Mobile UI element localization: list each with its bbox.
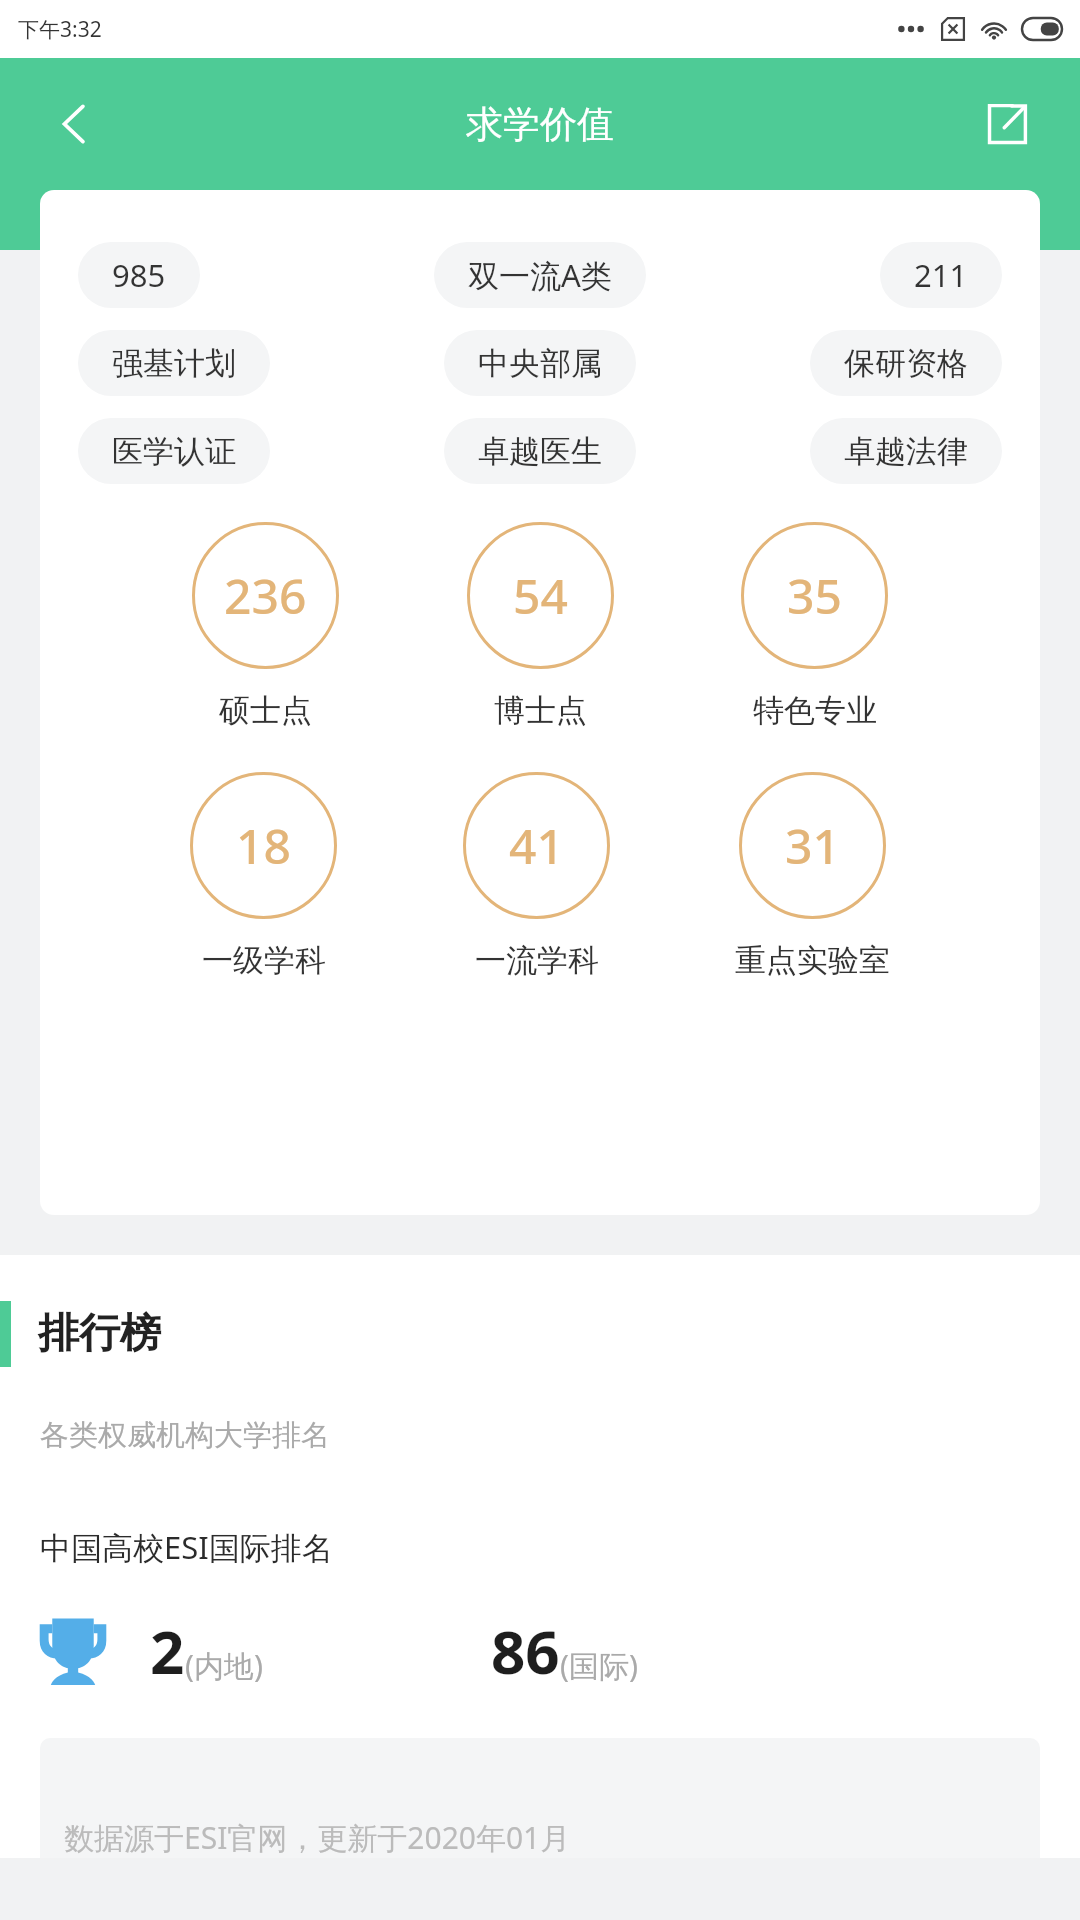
staticText: 86 <box>491 1610 560 1692</box>
staticText: 排行榜 <box>38 1308 161 1360</box>
staticText: 31 <box>785 813 840 878</box>
button[interactable]: 211 <box>880 242 1002 308</box>
staticText: 35 <box>787 563 842 628</box>
button[interactable]: 卓越医生 <box>444 418 636 484</box>
button[interactable]: 强基计划 <box>78 330 270 396</box>
button[interactable]: 中央部属 <box>444 330 636 396</box>
button[interactable]: Share <box>974 91 1040 157</box>
staticText: 41 <box>509 813 564 878</box>
staticText: 一流学科 <box>475 941 599 980</box>
staticText: 236 <box>224 563 307 628</box>
button[interactable]: 985 <box>78 242 200 308</box>
staticText: (内地) <box>185 1645 263 1686</box>
staticText: 特色专业 <box>753 691 877 730</box>
staticText: 强基计划 <box>112 344 236 383</box>
staticText: 54 <box>513 563 568 628</box>
staticText: 卓越医生 <box>478 432 602 471</box>
staticText: 博士点 <box>494 691 587 730</box>
button[interactable]: Back <box>42 91 108 157</box>
staticText: 卓越法律 <box>844 432 968 471</box>
button[interactable]: 双一流A类 <box>434 242 646 308</box>
staticText: 211 <box>914 254 968 296</box>
staticText: 985 <box>112 254 166 296</box>
staticText: 下午3:32 <box>18 15 102 44</box>
staticText: 数据源于ESI官网，更新于2020年01月 <box>64 1817 571 1858</box>
staticText: 医学认证 <box>112 432 236 471</box>
button[interactable]: 保研资格 <box>810 330 1002 396</box>
staticText: 保研资格 <box>844 344 968 383</box>
staticText: 双一流A类 <box>468 254 612 296</box>
button[interactable]: 医学认证 <box>78 418 270 484</box>
staticText: 求学价值 <box>466 101 614 148</box>
staticText: 中国高校ESI国际排名 <box>40 1526 333 1568</box>
staticText: 硕士点 <box>219 691 312 730</box>
staticText: (国际) <box>560 1645 638 1686</box>
staticText: 18 <box>236 813 291 878</box>
staticText: 一级学科 <box>202 941 326 980</box>
staticText: 中央部属 <box>478 344 602 383</box>
staticText: 各类权威机构大学排名 <box>40 1417 330 1454</box>
staticText: 重点实验室 <box>735 941 890 980</box>
button[interactable]: 卓越法律 <box>810 418 1002 484</box>
staticText: 2 <box>150 1610 185 1692</box>
